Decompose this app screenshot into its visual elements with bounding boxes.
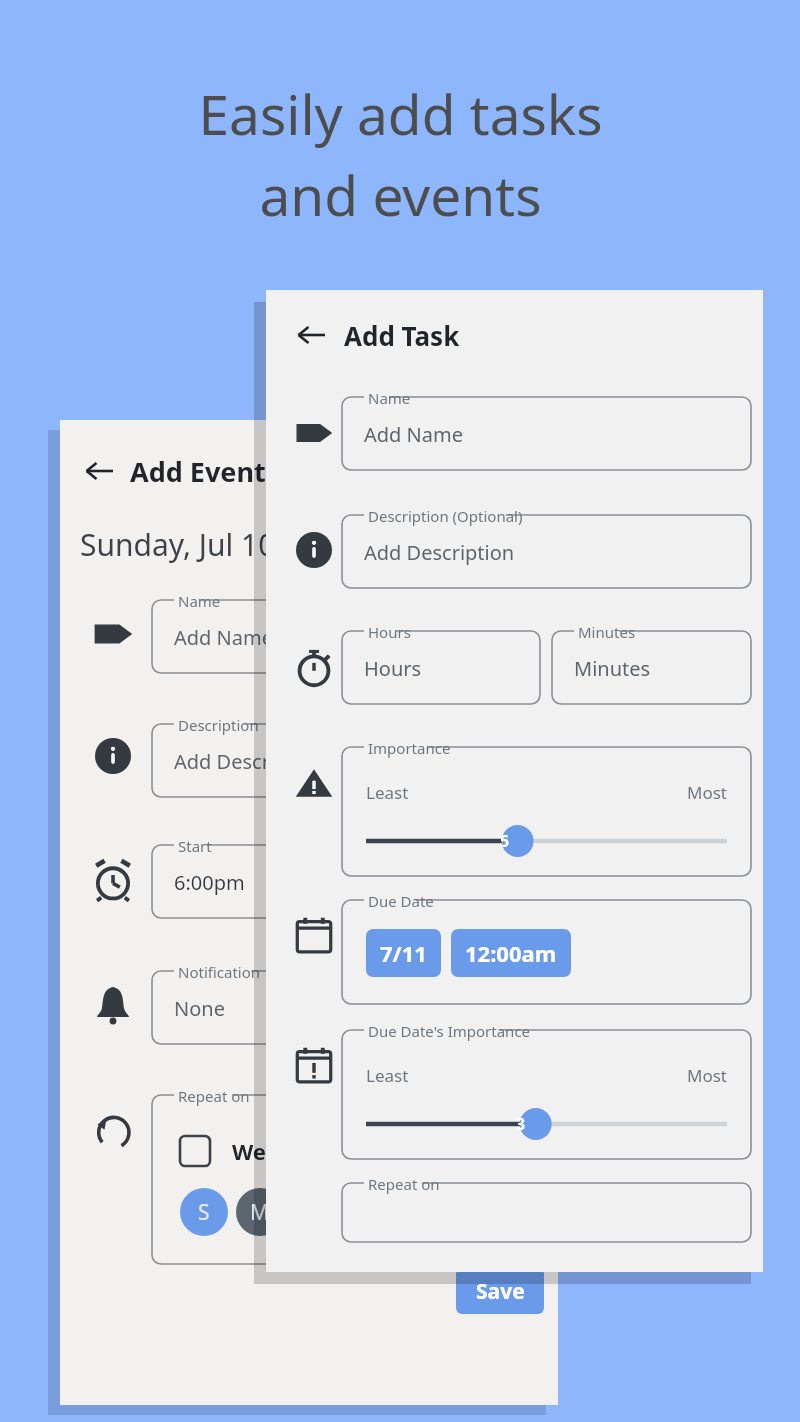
staticText: Most [687, 781, 727, 804]
button[interactable]: Back [290, 315, 330, 355]
button[interactable]: Weekly [180, 1136, 312, 1166]
staticText: Hours [368, 622, 411, 642]
button[interactable]: Back [266, 304, 763, 366]
staticText: Due Date's Importance [368, 1021, 531, 1041]
staticText: Weekly [232, 1136, 312, 1166]
staticText: 7/11 [380, 938, 427, 968]
staticText: 6:00pm [174, 869, 245, 896]
staticText: 12:00am [465, 938, 557, 968]
staticText: Most [687, 1064, 727, 1087]
staticText: Minutes [574, 655, 651, 682]
staticText: Easily add tasks [198, 76, 603, 151]
staticText: Repeat on [178, 1086, 250, 1106]
staticText: Add Name [364, 421, 463, 448]
staticText: Least [366, 781, 409, 804]
staticText: Description (Optional) [368, 506, 523, 526]
staticText: Add Description [364, 539, 515, 566]
staticText: 3 [516, 1113, 526, 1135]
staticText: M [250, 1198, 270, 1227]
staticText: 5 [500, 830, 510, 852]
button[interactable]: S [180, 1188, 228, 1236]
button[interactable]: Save [456, 1268, 544, 1314]
staticText: Notification [178, 962, 261, 982]
staticText: Start [178, 836, 212, 856]
staticText: None [174, 995, 225, 1022]
staticText: Importance [368, 738, 451, 758]
staticText: Repeat on [368, 1174, 440, 1194]
staticText: Name [178, 591, 221, 611]
button[interactable]: M [236, 1188, 284, 1236]
staticText: S [198, 1198, 210, 1227]
button[interactable]: Back [78, 451, 118, 491]
staticText: Due Date [368, 891, 434, 911]
staticText: Add Name [174, 624, 273, 651]
staticText: Least [366, 1064, 409, 1087]
staticText: Save [476, 1277, 525, 1306]
staticText: Minutes [578, 622, 636, 642]
button[interactable]: 7/11 [366, 929, 441, 977]
button[interactable]: 12:00am [451, 929, 571, 977]
staticText: Description [178, 715, 259, 735]
button[interactable]: Back [60, 440, 558, 502]
staticText: Add Event [130, 453, 266, 490]
staticText: Add Task [344, 318, 460, 353]
staticText: Add Description [174, 748, 325, 775]
staticText: and events [259, 157, 542, 232]
staticText: Sunday, Jul 10 [80, 524, 276, 565]
staticText: Name [368, 388, 411, 408]
staticText: Hours [364, 655, 422, 682]
